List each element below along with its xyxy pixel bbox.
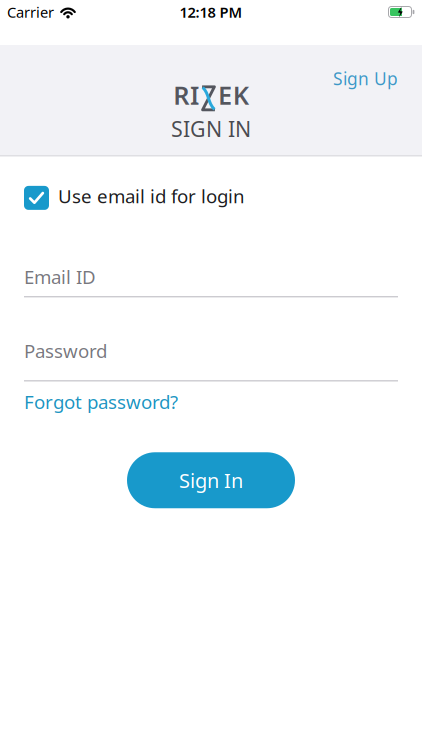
staticText: RI xyxy=(173,78,199,112)
staticText: Email ID xyxy=(24,264,96,289)
button[interactable]: Email ID xyxy=(24,264,398,297)
button[interactable]: Sign Up xyxy=(333,67,398,90)
staticText: SIGN IN xyxy=(171,115,251,143)
staticText: Forgot password? xyxy=(24,389,178,414)
staticText: Sign In xyxy=(179,467,243,494)
staticText: Sign Up xyxy=(333,67,398,90)
staticText: Password xyxy=(24,338,107,363)
button[interactable]: Use email id for login xyxy=(24,185,245,210)
staticText: 12:18 PM xyxy=(179,2,242,22)
button[interactable]: Password xyxy=(24,338,398,381)
staticText: Use email id for login xyxy=(58,183,245,208)
staticText: Carrier xyxy=(7,2,54,22)
button[interactable]: Forgot password? xyxy=(24,389,178,414)
staticText: EK xyxy=(218,78,249,112)
button[interactable]: Sign In xyxy=(127,452,295,508)
